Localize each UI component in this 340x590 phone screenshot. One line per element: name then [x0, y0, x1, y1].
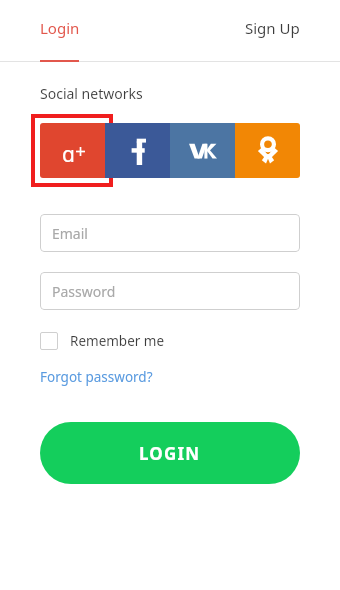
staticText: g — [62, 140, 75, 162]
staticText: Sign Up — [245, 18, 300, 38]
button[interactable]: Email — [40, 214, 300, 252]
button[interactable]: Sign Up — [245, 18, 300, 38]
staticText: LOGIN — [139, 442, 201, 465]
button[interactable]: Login — [40, 18, 80, 38]
staticText: Email — [52, 224, 88, 243]
staticText: Remember me — [70, 332, 165, 350]
button[interactable]: Remember me — [40, 332, 165, 350]
button[interactable]: Sign in with Google Plus — [40, 123, 105, 178]
staticText: Forgot password? — [40, 368, 153, 386]
button[interactable]: LOGIN — [40, 422, 300, 484]
button[interactable]: Password — [40, 272, 300, 310]
button[interactable]: Sign in with Odnoklassniki — [235, 123, 300, 178]
button[interactable]: Forgot password? — [40, 368, 153, 386]
staticText: Password — [52, 282, 116, 301]
staticText: Social networks — [40, 84, 143, 103]
button[interactable]: Sign in with Facebook — [105, 123, 170, 178]
staticText: Login — [40, 18, 80, 38]
button[interactable]: Sign in with VK — [170, 123, 235, 178]
